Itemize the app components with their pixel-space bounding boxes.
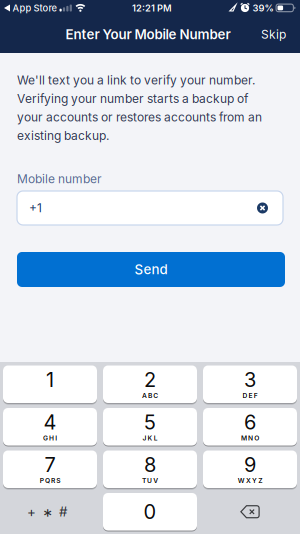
- staticText: 8: [144, 453, 156, 476]
- button[interactable]: 8: [103, 450, 197, 488]
- staticText: DEF: [242, 391, 258, 399]
- button[interactable]: 4: [3, 408, 97, 445]
- button[interactable]: 2: [103, 365, 197, 403]
- button[interactable]: 3: [203, 365, 297, 403]
- staticText: 6: [244, 410, 256, 434]
- button[interactable]: Back to App Store: [4, 2, 56, 13]
- staticText: 0: [143, 500, 156, 524]
- staticText: We'll text you a link to verify your num…: [17, 73, 255, 87]
- button[interactable]: Mobile number, +1: [17, 191, 283, 225]
- button[interactable]: 9: [203, 450, 297, 488]
- staticText: *: [43, 504, 52, 526]
- staticText: 7: [44, 453, 55, 476]
- staticText: 12:21 PM: [132, 2, 172, 13]
- button[interactable]: Send: [17, 252, 285, 287]
- staticText: 5: [144, 410, 156, 434]
- staticText: your accounts or restores accounts from …: [17, 110, 262, 124]
- staticText: 9: [244, 453, 256, 476]
- staticText: Enter Your Mobile Number: [65, 27, 230, 42]
- staticText: TUV: [142, 476, 158, 484]
- button[interactable]: 5: [103, 408, 197, 445]
- button[interactable]: 7: [3, 450, 97, 488]
- staticText: Mobile number: [17, 172, 102, 186]
- staticText: Skip: [261, 27, 286, 42]
- staticText: GHI: [43, 434, 57, 442]
- staticText: JKL: [142, 434, 158, 442]
- staticText: #: [59, 504, 67, 520]
- staticText: ABC: [142, 391, 158, 399]
- button[interactable]: 1: [3, 365, 97, 403]
- staticText: existing backup.: [17, 129, 109, 143]
- button[interactable]: 0: [103, 493, 197, 530]
- staticText: App Store: [12, 2, 56, 13]
- staticText: 2: [144, 368, 156, 391]
- staticText: 1: [46, 368, 54, 391]
- button[interactable]: Delete: [203, 493, 297, 530]
- button[interactable]: Symbols: [3, 493, 97, 530]
- staticText: WXYZ: [238, 476, 262, 484]
- staticText: 4: [43, 410, 56, 434]
- staticText: MNO: [241, 434, 259, 442]
- button[interactable]: Skip: [261, 27, 286, 42]
- staticText: Send: [134, 262, 167, 277]
- staticText: 3: [244, 368, 256, 391]
- staticText: 39%: [252, 2, 273, 13]
- staticText: PQRS: [40, 476, 60, 484]
- staticText: +: [27, 504, 36, 520]
- staticText: Verifying your number starts a backup of: [17, 92, 248, 106]
- button[interactable]: 6: [203, 408, 297, 445]
- staticText: +1: [29, 201, 42, 215]
